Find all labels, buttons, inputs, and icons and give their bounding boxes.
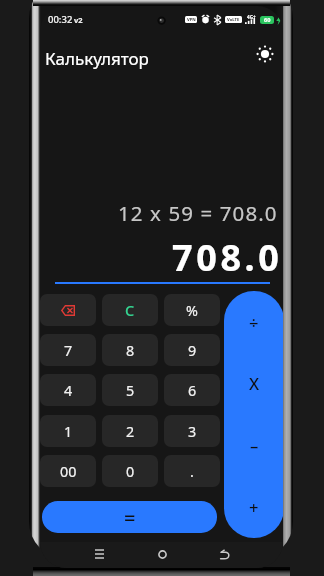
staticText: 8	[126, 341, 135, 360]
button[interactable]: –	[224, 414, 283, 476]
button[interactable]: .	[164, 455, 220, 487]
staticText: 00:32	[48, 13, 73, 26]
staticText: –	[250, 434, 259, 456]
staticText: 2	[126, 422, 135, 441]
button[interactable]: 1	[40, 415, 96, 447]
staticText: 5	[126, 381, 135, 400]
button[interactable]: Back	[213, 542, 237, 566]
staticText: 00	[60, 462, 77, 481]
staticText: %	[186, 301, 198, 320]
staticText: Калькулятор	[45, 47, 149, 70]
staticText: 4	[64, 381, 73, 400]
staticText: 4G+	[247, 14, 256, 20]
staticText: 12 x 59 = 708.0	[118, 199, 278, 227]
button[interactable]: =	[42, 501, 217, 533]
staticText: 708.0	[172, 233, 283, 282]
staticText: =	[124, 504, 136, 531]
button[interactable]: ÷	[224, 291, 283, 352]
button[interactable]: Home	[150, 542, 174, 566]
staticText: 3	[188, 422, 197, 441]
button[interactable]: %	[164, 294, 220, 326]
button[interactable]: 00	[40, 455, 96, 487]
button[interactable]: 8	[102, 334, 158, 366]
button[interactable]: 6	[164, 374, 220, 406]
staticText: 0	[126, 462, 135, 481]
button[interactable]: +	[224, 476, 283, 538]
button[interactable]: 0	[102, 455, 158, 487]
staticText: 6	[188, 381, 197, 400]
button[interactable]: 5	[102, 374, 158, 406]
staticText: X	[249, 372, 260, 394]
staticText: ÷	[249, 311, 259, 333]
button[interactable]: Toggle light theme	[252, 41, 278, 67]
button[interactable]: C	[102, 294, 158, 326]
staticText: C	[125, 300, 135, 320]
staticText: v2	[74, 15, 83, 25]
button[interactable]: Recent apps	[87, 542, 111, 566]
button[interactable]: Backspace	[40, 294, 96, 326]
staticText: VoLTE	[227, 17, 240, 23]
staticText: .	[190, 462, 194, 481]
staticText: 9	[188, 341, 197, 360]
button[interactable]: 9	[164, 334, 220, 366]
button[interactable]: 3	[164, 415, 220, 447]
button[interactable]: 7	[40, 334, 96, 366]
staticText: 1	[64, 422, 73, 441]
staticText: 7	[64, 341, 73, 360]
staticText: VPN	[187, 17, 196, 23]
button[interactable]: 2	[102, 415, 158, 447]
button[interactable]: 4	[40, 374, 96, 406]
button[interactable]: X	[224, 352, 283, 414]
staticText: 60	[264, 16, 271, 24]
staticText: +	[249, 496, 259, 518]
